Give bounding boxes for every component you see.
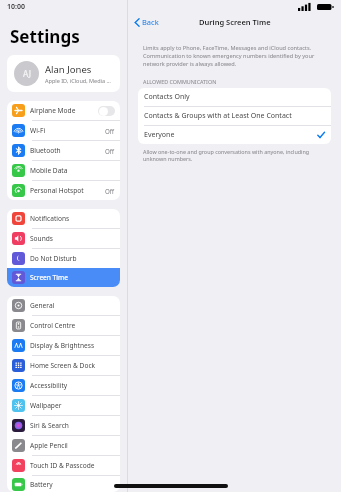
staticText: Accessibility: [30, 381, 115, 390]
button[interactable]: Contacts Only: [138, 88, 331, 106]
staticText: Sounds: [30, 234, 115, 243]
button[interactable]: Battery: [7, 476, 120, 492]
staticText: ALLOWED COMMUNICATION: [143, 78, 217, 85]
button[interactable]: Accessibility: [7, 376, 120, 395]
button[interactable]: Do Not Disturb: [7, 249, 120, 268]
staticText: Contacts Only: [144, 92, 325, 102]
staticText: Control Centre: [30, 321, 115, 330]
staticText: General: [30, 301, 115, 310]
button[interactable]: AJ: [7, 55, 120, 92]
button[interactable]: Airplane Mode: [7, 101, 120, 120]
staticText: Siri & Search: [30, 421, 115, 430]
staticText: Limits apply to Phone, FaceTime, Message…: [143, 44, 326, 68]
staticText: Notifications: [30, 214, 115, 223]
button[interactable]: Back: [131, 15, 162, 29]
button[interactable]: Wallpaper: [7, 396, 120, 415]
staticText: Airplane Mode: [30, 106, 98, 115]
staticText: Home Screen & Dock: [30, 361, 115, 370]
button[interactable]: Notifications: [7, 209, 120, 228]
staticText: Allow one-to-one and group conversations…: [143, 148, 326, 162]
button[interactable]: Contacts & Groups with at Least One Cont…: [138, 107, 331, 125]
button[interactable]: Control Centre: [7, 316, 120, 335]
button[interactable]: Wi-Fi: [7, 121, 120, 140]
staticText: Display & Brightness: [30, 341, 115, 350]
staticText: Everyone: [144, 130, 317, 140]
button[interactable]: Display & Brightness: [7, 336, 120, 355]
button[interactable]: Personal Hotspot: [7, 181, 120, 200]
staticText: AJ: [23, 68, 31, 79]
staticText: During Screen Time: [199, 17, 271, 27]
staticText: Apple ID, iCloud, Media &…: [45, 77, 113, 84]
staticText: Settings: [10, 25, 80, 48]
button[interactable]: Screen Time: [7, 268, 120, 287]
button[interactable]: Bluetooth: [7, 141, 120, 160]
button[interactable]: Siri & Search: [7, 416, 120, 435]
button[interactable]: Sounds: [7, 229, 120, 248]
staticText: Back: [142, 17, 159, 27]
staticText: Do Not Disturb: [30, 254, 115, 263]
staticText: Off: [105, 127, 115, 135]
button[interactable]: Touch ID & Passcode: [7, 456, 120, 475]
staticText: Alan Jones: [45, 63, 92, 76]
button[interactable]: Mobile Data: [7, 161, 120, 180]
button[interactable]: Home Screen & Dock: [7, 356, 120, 375]
button[interactable]: Everyone: [138, 126, 331, 144]
staticText: Battery: [30, 480, 115, 489]
staticText: Wi-Fi: [30, 126, 105, 135]
button[interactable]: Airplane Mode toggle: [98, 106, 115, 116]
staticText: Personal Hotspot: [30, 186, 105, 195]
button[interactable]: Apple Pencil: [7, 436, 120, 455]
staticText: Off: [105, 147, 115, 155]
staticText: Apple Pencil: [30, 441, 115, 450]
staticText: Mobile Data: [30, 166, 115, 175]
staticText: Wallpaper: [30, 401, 115, 410]
staticText: 10:00: [7, 2, 25, 12]
button[interactable]: General: [7, 296, 120, 315]
staticText: Screen Time: [30, 273, 115, 282]
staticText: Off: [105, 187, 115, 195]
staticText: Contacts & Groups with at Least One Cont…: [144, 111, 325, 121]
staticText: Bluetooth: [30, 146, 105, 155]
staticText: Touch ID & Passcode: [30, 461, 115, 470]
